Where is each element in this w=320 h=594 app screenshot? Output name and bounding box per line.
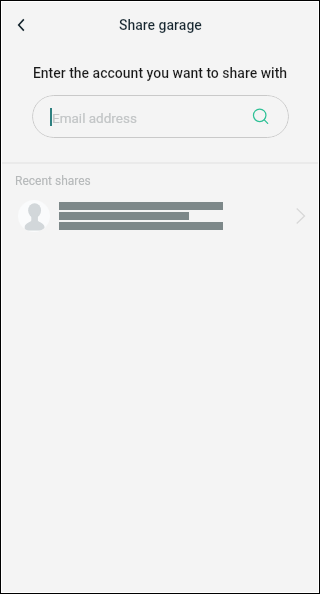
staticText: Email address bbox=[52, 110, 137, 126]
staticText: Recent shares bbox=[15, 174, 91, 188]
button[interactable]: Back bbox=[3, 7, 39, 43]
button[interactable] bbox=[1, 194, 319, 238]
button[interactable]: Email address bbox=[32, 95, 289, 138]
staticText: Share garage bbox=[119, 17, 202, 33]
staticText: Enter the account you want to share with bbox=[1, 65, 319, 81]
